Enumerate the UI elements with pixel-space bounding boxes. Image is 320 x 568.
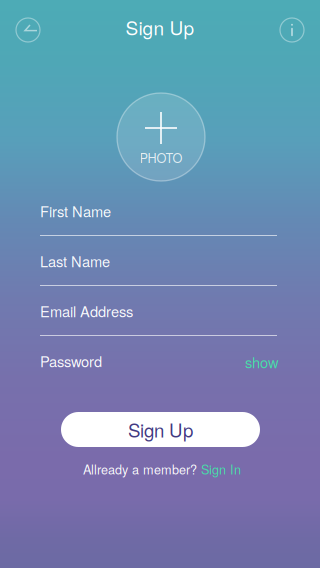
- staticText: PHOTO: [139, 148, 182, 166]
- button[interactable]: Sign Up: [61, 412, 260, 447]
- button[interactable]: Information: [270, 8, 314, 52]
- staticText: Email Address: [40, 300, 133, 321]
- staticText: Allready a member?: [83, 460, 197, 478]
- staticText: Sign Up: [128, 416, 193, 443]
- staticText: Sign In: [201, 460, 241, 478]
- staticText: Last Name: [40, 250, 110, 271]
- button[interactable]: Add photo: [117, 93, 205, 181]
- staticText: First Name: [40, 200, 111, 221]
- staticText: show: [245, 351, 279, 372]
- button[interactable]: Back: [6, 8, 50, 52]
- staticText: Sign Up: [125, 13, 194, 41]
- button[interactable]: Allready a member?: [72, 461, 252, 477]
- button[interactable]: show: [219, 354, 279, 370]
- staticText: Password: [40, 350, 102, 371]
